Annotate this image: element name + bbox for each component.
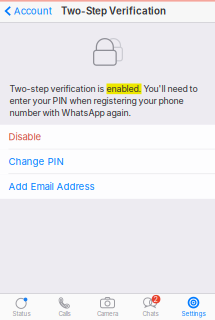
- button[interactable]: Status: [0, 294, 43, 320]
- staticText: Disable: [8, 131, 41, 143]
- staticText: Account: [14, 5, 52, 17]
- button[interactable]: Add Email Address: [0, 174, 215, 199]
- staticText: Settings: [181, 310, 205, 317]
- button[interactable]: Settings: [172, 294, 215, 320]
- staticText: Camera: [97, 310, 118, 317]
- button[interactable]: Disable: [0, 125, 215, 149]
- button[interactable]: 2: [129, 294, 172, 320]
- staticText: Change PIN: [8, 156, 63, 167]
- staticText: Two-step verification is enabled. You'll…: [9, 83, 197, 118]
- staticText: Calls: [58, 310, 70, 317]
- button[interactable]: Account: [0, 0, 57, 22]
- staticText: Two-Step Verification: [61, 5, 166, 17]
- button[interactable]: Calls: [43, 294, 86, 320]
- staticText: Chats: [142, 310, 158, 317]
- staticText: Add Email Address: [8, 181, 94, 192]
- button[interactable]: Change PIN: [0, 149, 215, 174]
- staticText: Status: [12, 310, 30, 317]
- staticText: 2: [154, 295, 159, 304]
- button[interactable]: Camera: [86, 294, 129, 320]
